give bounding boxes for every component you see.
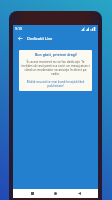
button[interactable]: Back bbox=[16, 34, 24, 42]
staticText: 9:10 bbox=[15, 26, 23, 31]
staticText: Bun găsit, prieteni dragi! bbox=[35, 52, 77, 57]
staticText: În acest moment nu se fac dedicaţii. Te … bbox=[21, 60, 90, 76]
button[interactable]: Home bbox=[51, 189, 60, 198]
button[interactable]: Back bbox=[75, 189, 84, 198]
button[interactable]: Recent apps bbox=[28, 189, 37, 198]
staticText: Dedicatii Live bbox=[27, 36, 53, 41]
staticText: Multă muzică te mai bună însoţită fără p… bbox=[21, 80, 90, 88]
